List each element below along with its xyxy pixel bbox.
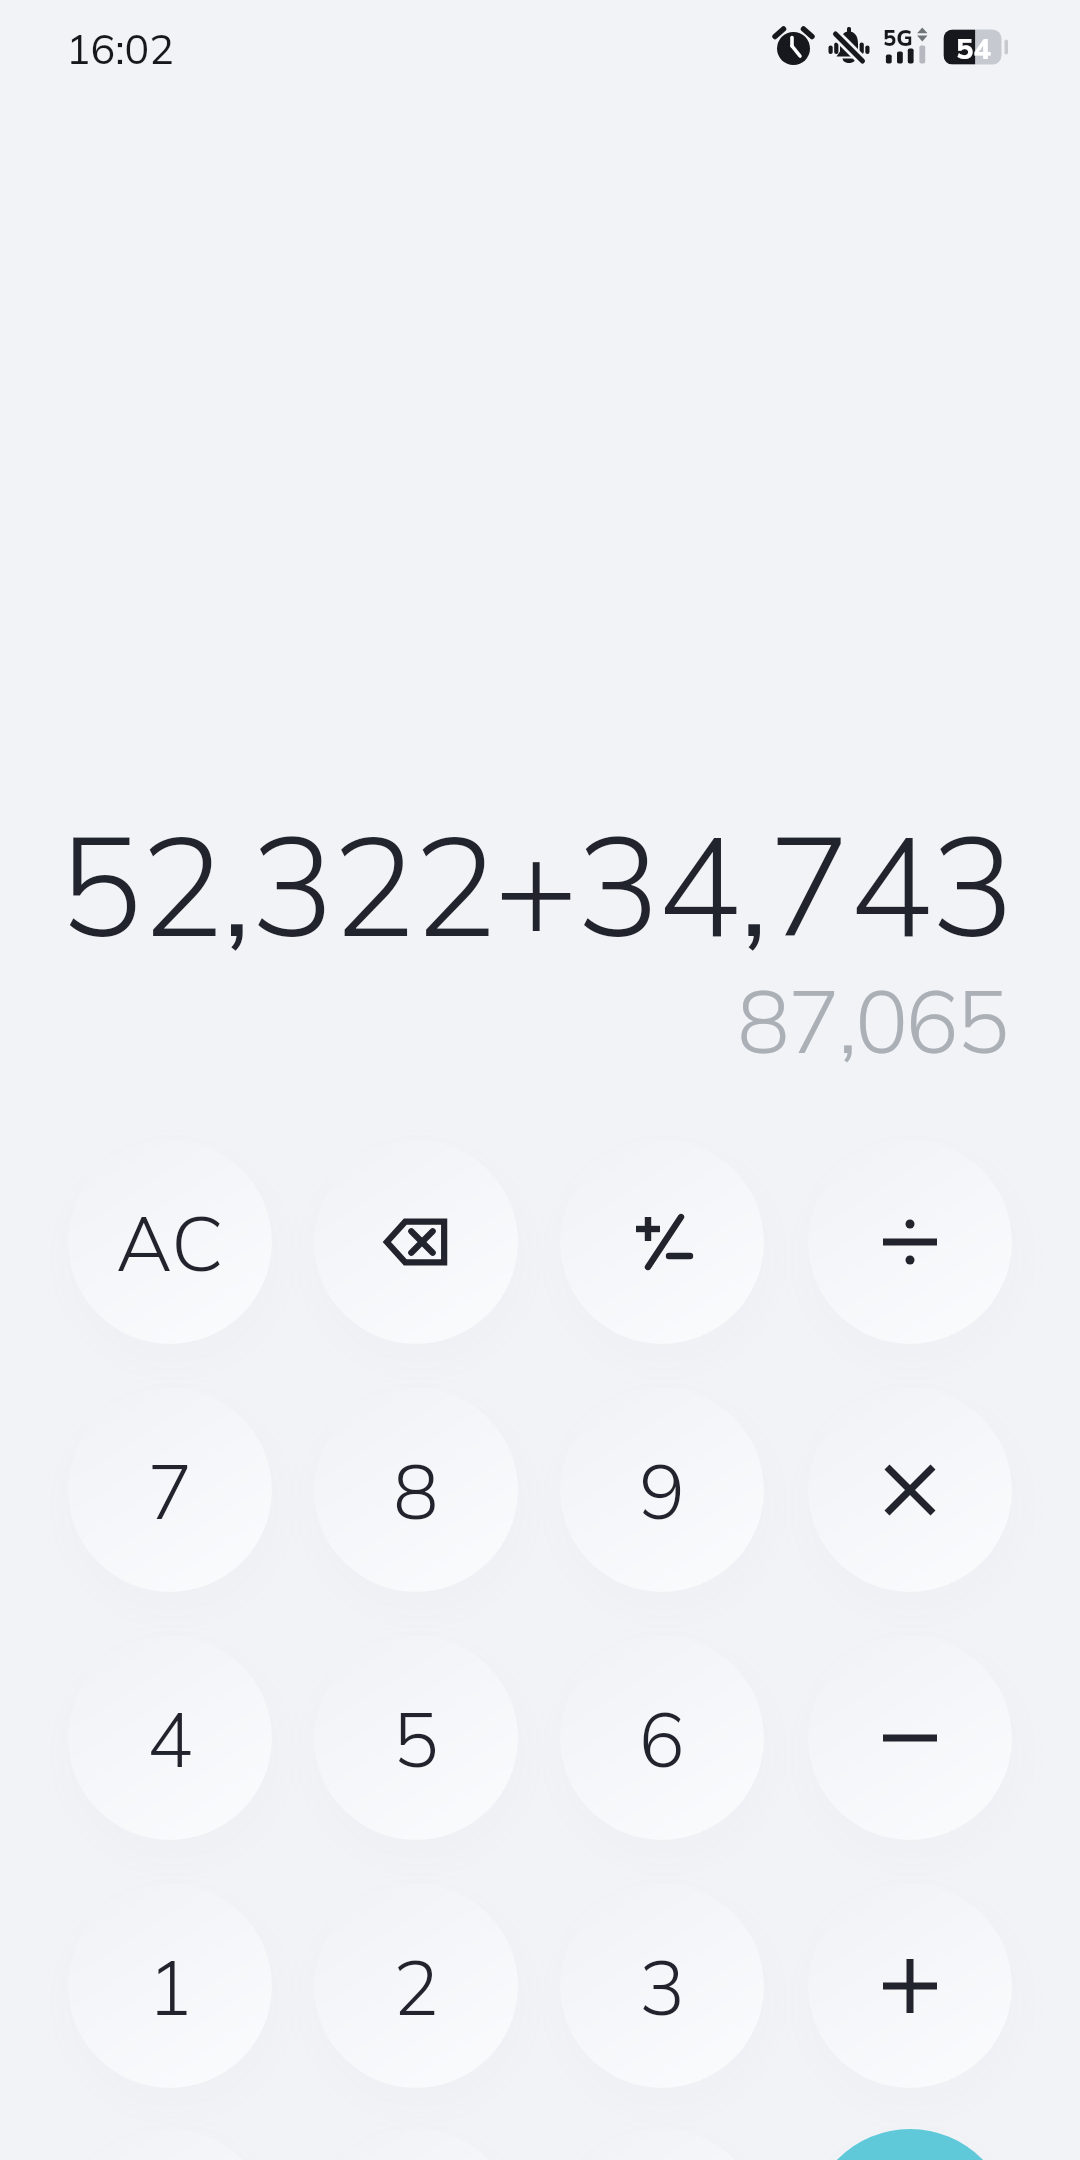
staticText: 87,065 bbox=[737, 965, 1008, 1075]
button[interactable]: key 2_1 bbox=[314, 1636, 518, 1840]
button[interactable]: key 2_2 bbox=[560, 1636, 764, 1840]
staticText: 16:02 bbox=[66, 23, 174, 74]
staticText: AC bbox=[116, 1194, 224, 1291]
staticText: 7 bbox=[147, 1443, 193, 1538]
button[interactable]: key 3_1 bbox=[314, 1884, 518, 2088]
button[interactable]: key 2_0 bbox=[68, 1636, 272, 1840]
staticText: 3 bbox=[639, 1939, 685, 2034]
button[interactable]: key 1_1 bbox=[314, 1388, 518, 1592]
button[interactable]: key 1_2 bbox=[560, 1388, 764, 1592]
button[interactable]: key 0_2 bbox=[560, 1140, 764, 1344]
button[interactable]: key 0_3 bbox=[808, 1140, 1012, 1344]
staticText: 5G bbox=[883, 24, 913, 48]
staticText: 4 bbox=[147, 1691, 193, 1786]
staticText: 9 bbox=[639, 1443, 685, 1538]
staticText: 6 bbox=[639, 1691, 685, 1786]
button[interactable]: key 0_0 bbox=[68, 1140, 272, 1344]
button[interactable]: key 1_3 bbox=[808, 1388, 1012, 1592]
button[interactable]: key 2_3 bbox=[808, 1636, 1012, 1840]
button[interactable]: key 1_0 bbox=[68, 1388, 272, 1592]
button[interactable]: key 4_3 bbox=[808, 2129, 1012, 2160]
button[interactable]: key 3_0 bbox=[68, 1884, 272, 2088]
staticText: 1 bbox=[147, 1939, 193, 2034]
staticText: 52,322+34,743 bbox=[59, 797, 1013, 957]
staticText: 8 bbox=[393, 1443, 439, 1538]
staticText: 2 bbox=[393, 1939, 439, 2034]
staticText: 54 bbox=[956, 30, 991, 64]
button[interactable]: key 3_2 bbox=[560, 1884, 764, 2088]
button[interactable]: key 0_1 bbox=[314, 1140, 518, 1344]
staticText: 5 bbox=[393, 1691, 439, 1786]
button[interactable]: key 3_3 bbox=[808, 1884, 1012, 2088]
